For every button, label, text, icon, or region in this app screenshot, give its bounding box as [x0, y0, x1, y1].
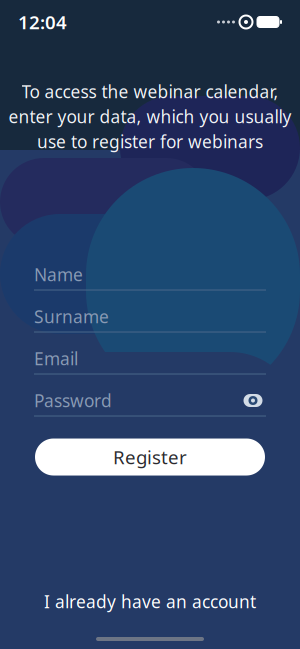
staticText: Email — [34, 347, 78, 370]
button[interactable]: Register — [35, 438, 265, 475]
staticText: Register — [113, 445, 187, 469]
button[interactable]: Show password — [240, 389, 266, 411]
button[interactable]: I already have an account — [28, 582, 272, 621]
staticText: Surname — [34, 305, 109, 328]
staticText: Name — [34, 263, 83, 286]
staticText: Password — [34, 389, 112, 412]
staticText: use to register for webinars — [37, 130, 263, 153]
staticText: enter your data, which you usually — [8, 105, 291, 128]
staticText: I already have an account — [44, 590, 256, 613]
staticText: To access the webinar calendar, — [21, 80, 278, 103]
staticText: 12:04 — [18, 10, 67, 34]
